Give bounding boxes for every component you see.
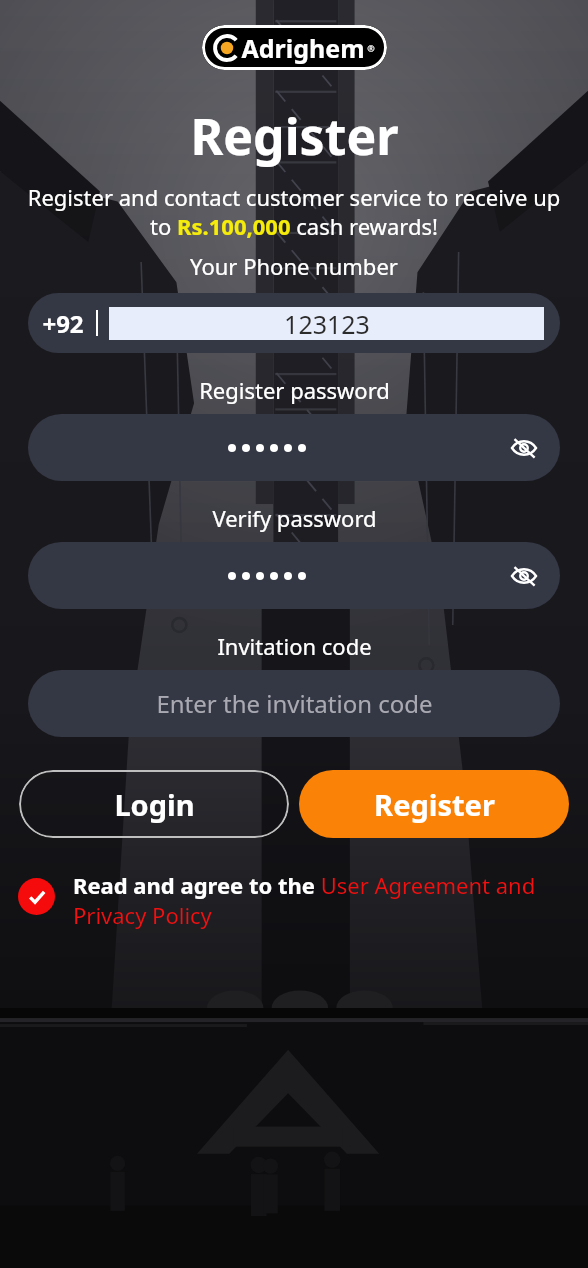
button[interactable]: Enter the invitation code — [28, 670, 560, 737]
staticText: Invitation code — [217, 631, 372, 661]
button[interactable]: Agree to terms — [18, 878, 55, 915]
button[interactable]: Agree to terms — [18, 870, 572, 930]
button[interactable]: Show password — [506, 430, 542, 466]
button[interactable]: Login — [19, 770, 289, 838]
staticText: Login — [114, 785, 195, 824]
button[interactable]: +92 — [28, 293, 560, 353]
button[interactable]: Show password — [28, 542, 560, 609]
staticText: Adrighem — [241, 31, 365, 65]
staticText: Register — [374, 785, 495, 824]
staticText: +92 — [42, 307, 84, 340]
button[interactable]: Show password — [506, 558, 542, 594]
staticText: Verify password — [212, 503, 377, 533]
staticText: Read and agree to the User Agreement and… — [73, 870, 572, 930]
staticText: ® — [367, 42, 375, 54]
staticText: Register and contact customer service to… — [22, 182, 566, 241]
staticText: Enter the invitation code — [156, 687, 433, 720]
button[interactable]: Register — [299, 770, 569, 838]
staticText: 123123 — [284, 307, 370, 340]
button[interactable]: Show password — [28, 414, 560, 481]
staticText: Your Phone number — [190, 251, 398, 281]
staticText: Register — [190, 102, 399, 170]
staticText: Register password — [199, 375, 390, 405]
